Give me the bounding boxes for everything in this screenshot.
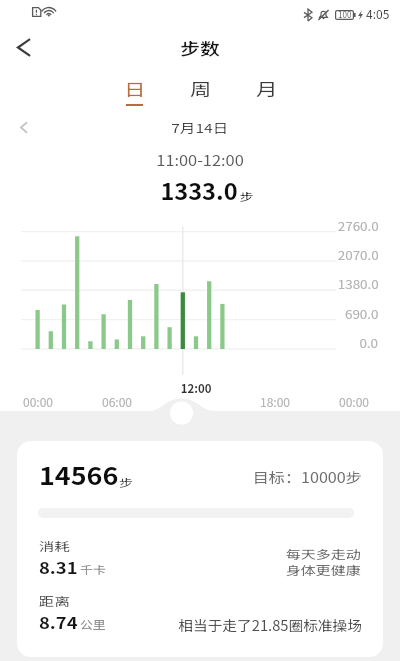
staticText: 7月14日 [171,118,229,137]
staticText: 100 [338,9,352,21]
button[interactable]: 周 [178,76,222,106]
staticText: 8.74 [39,610,78,633]
staticText: 2070.0 [338,245,379,264]
staticText: 1380.0 [338,274,379,293]
staticText: 月 [256,76,277,101]
staticText: 周 [190,76,211,101]
staticText: 步 [119,474,133,490]
button[interactable]: Previous day [8,112,38,142]
staticText: 4:05 [366,5,390,22]
button[interactable]: 日 [112,76,156,106]
staticText: 00:00 [339,393,369,410]
button[interactable]: Back [6,30,40,64]
staticText: 00:00 [23,393,53,410]
staticText: 8.31 [39,555,78,578]
staticText: 14566 [39,457,118,492]
staticText: 公里 [80,616,106,632]
staticText: 千卡 [80,561,106,577]
staticText: 日 [124,76,145,101]
staticText: 相当于走了21.85圈标准操场 [178,615,362,635]
staticText: 12:00 [181,379,212,396]
staticText: 690.0 [345,304,379,323]
staticText: 步数 [180,35,220,60]
staticText: 06:00 [102,393,132,410]
button[interactable]: 月 [244,76,288,106]
staticText: 目标：10000步 [253,467,362,487]
staticText: 消耗 [39,537,71,554]
staticText: 11:00-12:00 [156,149,245,171]
staticText: 距离 [39,592,71,609]
staticText: 身体更健康 [286,561,362,578]
staticText: 18:00 [260,393,290,410]
staticText: 0.0 [359,333,379,352]
staticText: 步 [239,188,254,204]
staticText: 1333.0 [160,174,238,206]
staticText: 每天多走动 [286,545,362,562]
staticText: 2760.0 [338,216,379,235]
